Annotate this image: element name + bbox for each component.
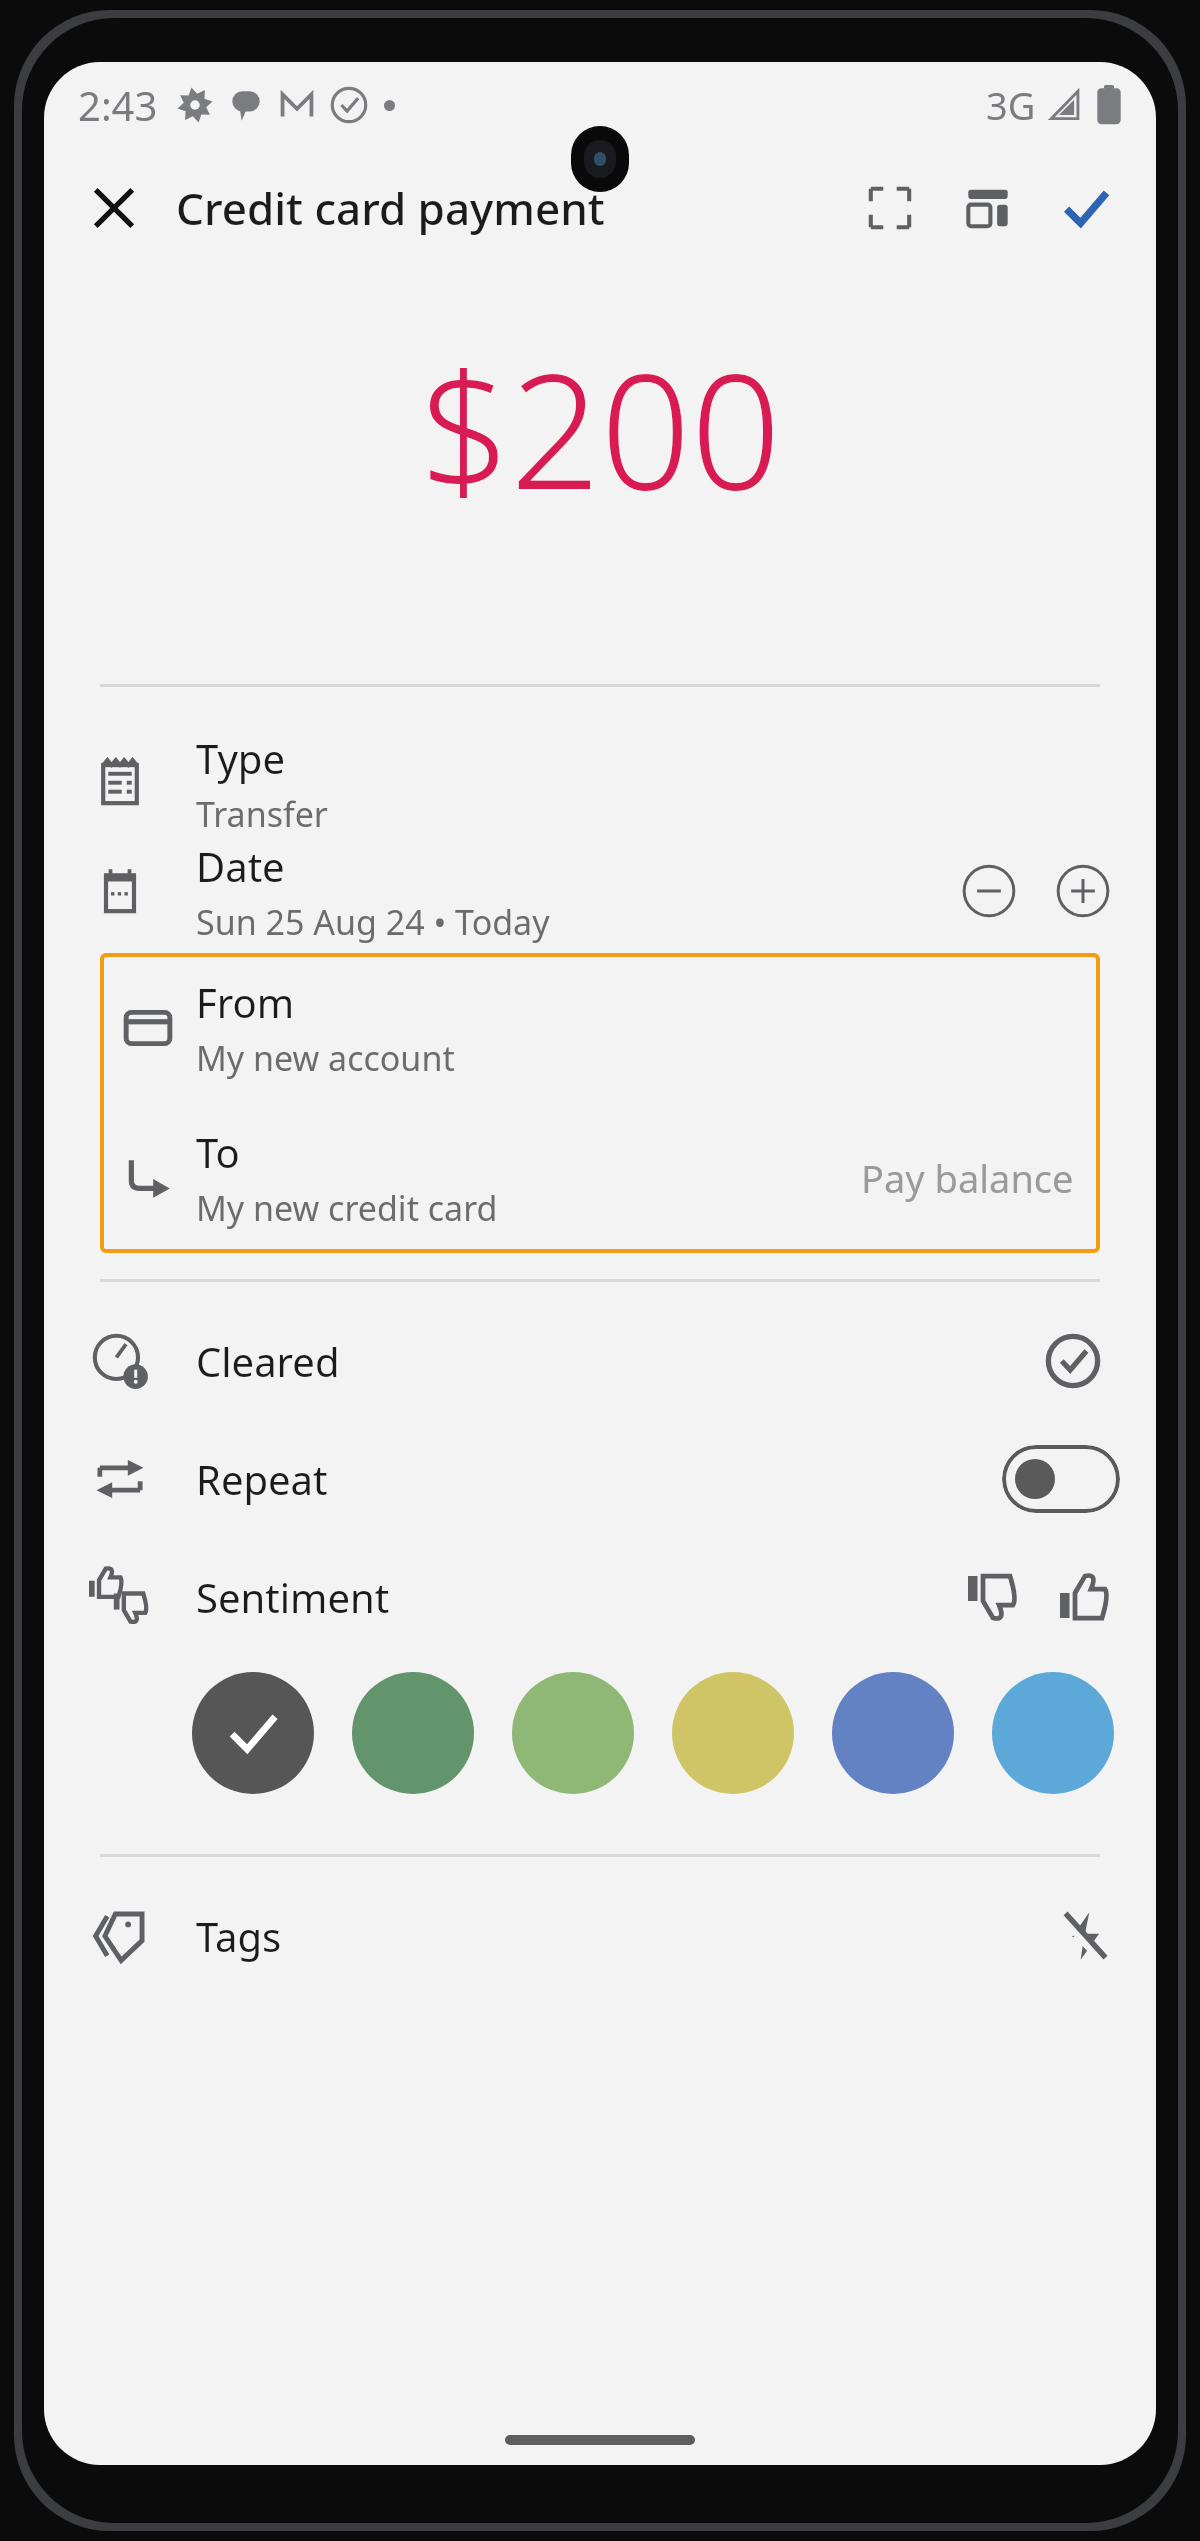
staticText: Sentiment [196,1570,390,1624]
button[interactable]: Scan [844,162,936,254]
button[interactable]: Colour selected [192,1672,314,1794]
staticText: Tags [196,1909,282,1963]
button[interactable]: Colour [672,1672,794,1794]
staticText: Date [196,839,285,893]
staticText: Cleared [196,1334,340,1388]
button[interactable]: Repeat [44,1420,1156,1538]
button[interactable]: Layout [942,162,1034,254]
button[interactable]: To [100,1103,1100,1253]
button[interactable]: Save [1040,162,1132,254]
staticText: My new account [196,1035,455,1081]
staticText: Sun 25 Aug 24 • Today [196,899,550,943]
button[interactable]: Sentiment [44,1538,1156,1656]
button[interactable]: Cleared [1030,1318,1116,1404]
button[interactable]: Colour [352,1672,474,1794]
button[interactable]: Type [44,731,1156,835]
button[interactable]: Thumb down [946,1551,1038,1643]
staticText: Pay balance [861,1152,1074,1204]
staticText: Type [196,731,285,785]
staticText: 2:43 [78,78,158,132]
button[interactable]: Date [44,839,1156,943]
button[interactable]: Tags [44,1881,1156,1991]
staticText: To [196,1125,240,1179]
button[interactable]: From [100,953,1100,1103]
button[interactable]: Colour [992,1672,1114,1794]
button[interactable]: $200 [44,268,1156,684]
staticText: Credit card payment [176,178,605,238]
staticText: My new credit card [196,1185,498,1231]
button[interactable]: Previous day [942,844,1036,938]
button[interactable]: Cleared [44,1302,1156,1420]
button[interactable]: Close [68,162,160,254]
button[interactable]: Colour [512,1672,634,1794]
button[interactable]: Thumb up [1038,1551,1130,1643]
button[interactable]: Repeat toggle [1002,1445,1120,1513]
staticText: 3G [986,79,1036,131]
button[interactable]: Next day [1036,844,1130,938]
staticText: $200 [420,320,781,535]
button[interactable]: Flash off [1042,1893,1128,1979]
staticText: From [196,975,295,1029]
staticText: Transfer [196,791,328,835]
button[interactable]: Pay balance [861,1152,1074,1204]
button[interactable]: Colour [832,1672,954,1794]
staticText: Repeat [196,1452,328,1506]
